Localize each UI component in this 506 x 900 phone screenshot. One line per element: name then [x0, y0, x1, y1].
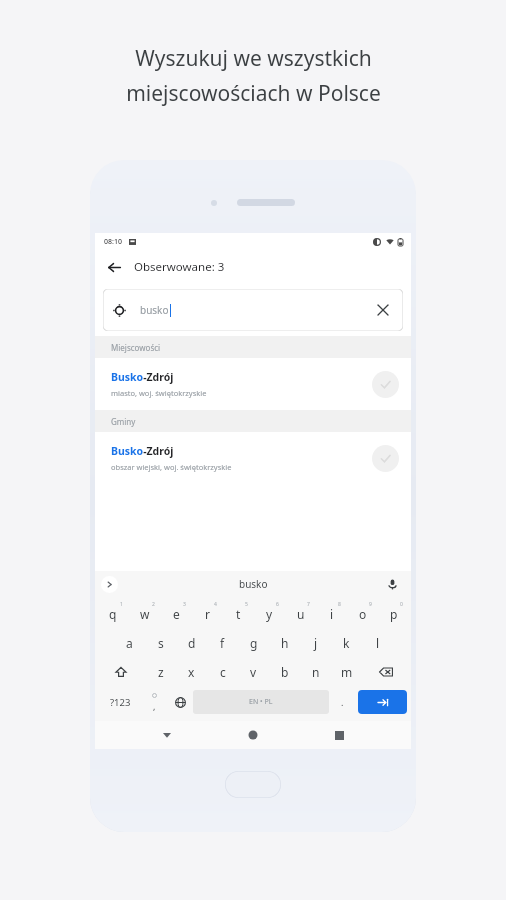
staticText: h: [281, 635, 289, 651]
staticText: o: [359, 606, 367, 622]
button[interactable]: Backspace: [362, 658, 409, 685]
button[interactable]: Shift: [97, 658, 145, 685]
button[interactable]: y: [254, 600, 285, 627]
button[interactable]: busko: [239, 577, 268, 591]
staticText: 0: [400, 601, 403, 608]
button[interactable]: a: [114, 629, 145, 656]
staticText: p: [390, 606, 398, 622]
button[interactable]: g: [238, 629, 269, 656]
button[interactable]: e: [161, 600, 192, 627]
staticText: g: [250, 635, 258, 651]
staticText: 5: [245, 601, 248, 608]
staticText: Busko-Zdrój: [111, 444, 174, 458]
staticText: 6: [276, 601, 279, 608]
button[interactable]: Clear: [373, 300, 393, 320]
staticText: Obserwowane: 3: [134, 259, 225, 275]
staticText: Gminy: [111, 416, 136, 427]
staticText: m: [341, 664, 353, 680]
staticText: 9: [369, 601, 372, 608]
button[interactable]: Recents: [325, 721, 353, 749]
button[interactable]: l: [362, 629, 393, 656]
button[interactable]: z: [145, 658, 176, 685]
button[interactable]: Change language: [167, 688, 193, 716]
button[interactable]: Voice input: [383, 575, 401, 593]
staticText: n: [312, 664, 320, 680]
button[interactable]: EN • PL: [193, 690, 329, 714]
staticText: 8: [338, 601, 341, 608]
button[interactable]: d: [176, 629, 207, 656]
staticText: u: [297, 606, 305, 622]
staticText: r: [205, 606, 210, 622]
button[interactable]: Busko-Zdrój: [95, 432, 411, 484]
button[interactable]: c: [207, 658, 238, 685]
button[interactable]: Back: [101, 254, 127, 280]
staticText: ,: [153, 700, 156, 712]
button[interactable]: k: [331, 629, 362, 656]
staticText: 2: [152, 601, 155, 608]
button[interactable]: b: [269, 658, 300, 685]
button[interactable]: u: [285, 600, 316, 627]
button[interactable]: Busko-Zdrój: [95, 358, 411, 410]
button[interactable]: Back: [153, 721, 181, 749]
staticText: 08:10: [104, 237, 122, 247]
staticText: 7: [307, 601, 310, 608]
staticText: x: [188, 664, 195, 680]
staticText: Miejscowości: [111, 342, 161, 353]
button[interactable]: Follow: [372, 371, 399, 398]
button[interactable]: r: [192, 600, 223, 627]
button[interactable]: Comma: [141, 688, 167, 716]
button[interactable]: s: [145, 629, 176, 656]
button[interactable]: v: [238, 658, 269, 685]
button[interactable]: t: [223, 600, 254, 627]
button[interactable]: Expand suggestions: [101, 576, 118, 593]
button[interactable]: i: [316, 600, 347, 627]
staticText: z: [158, 664, 164, 680]
staticText: busko: [140, 303, 169, 317]
staticText: v: [250, 664, 257, 680]
staticText: f: [220, 635, 225, 651]
button[interactable]: w: [129, 600, 161, 627]
button[interactable]: busko: [103, 289, 403, 331]
staticText: obszar wiejski, woj. świętokrzyskie: [111, 462, 232, 472]
button[interactable]: n: [300, 658, 331, 685]
staticText: q: [109, 606, 117, 622]
staticText: miejscowościach w Polsce: [126, 79, 381, 108]
staticText: i: [330, 606, 334, 622]
button[interactable]: q: [97, 600, 129, 627]
staticText: y: [266, 606, 273, 622]
button[interactable]: h: [269, 629, 300, 656]
staticText: 1: [120, 601, 123, 608]
staticText: a: [126, 635, 133, 651]
staticText: 4: [214, 601, 217, 608]
staticText: Wyszukuj we wszystkich: [135, 44, 372, 73]
staticText: c: [220, 664, 226, 680]
button[interactable]: Home: [239, 721, 267, 749]
staticText: k: [343, 635, 350, 651]
staticText: Busko-Zdrój: [111, 370, 174, 384]
staticText: b: [281, 664, 289, 680]
staticText: miasto, woj. świętokrzyskie: [111, 388, 207, 398]
staticText: d: [188, 635, 196, 651]
staticText: .: [341, 696, 344, 708]
button[interactable]: Enter: [358, 690, 407, 714]
staticText: e: [173, 606, 180, 622]
staticText: j: [314, 635, 318, 651]
staticText: s: [158, 635, 164, 651]
button[interactable]: Follow: [372, 445, 399, 472]
button[interactable]: m: [331, 658, 362, 685]
staticText: ?123: [110, 696, 131, 709]
button[interactable]: p: [378, 600, 409, 627]
button[interactable]: f: [207, 629, 238, 656]
button[interactable]: j: [300, 629, 331, 656]
button[interactable]: o: [347, 600, 378, 627]
button[interactable]: Period: [329, 688, 355, 716]
staticText: t: [236, 606, 241, 622]
staticText: l: [376, 635, 380, 651]
staticText: w: [140, 606, 150, 622]
button[interactable]: ?123: [99, 688, 141, 716]
button[interactable]: x: [176, 658, 207, 685]
staticText: EN • PL: [249, 697, 273, 707]
staticText: 3: [183, 601, 186, 608]
